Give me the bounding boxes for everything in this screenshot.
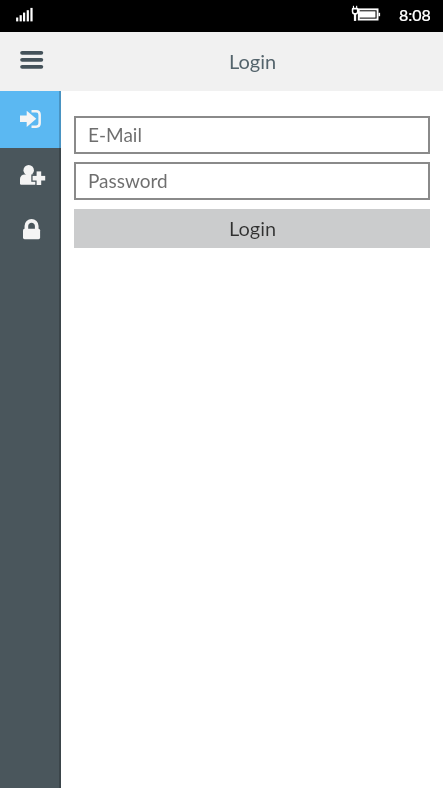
button[interactable]: Menu [8, 40, 52, 84]
staticText: Login [229, 216, 277, 240]
staticText: Password [88, 169, 168, 192]
button[interactable]: E-Mail [74, 116, 430, 154]
button[interactable]: Forgot password [0, 205, 61, 262]
button[interactable]: Password [74, 162, 430, 200]
button[interactable]: Login [0, 91, 61, 148]
staticText: Login [229, 49, 277, 73]
button[interactable]: Login [74, 209, 430, 248]
button[interactable]: Register [0, 148, 61, 205]
staticText: E-Mail [88, 123, 142, 146]
staticText: 8:08 [399, 5, 431, 24]
